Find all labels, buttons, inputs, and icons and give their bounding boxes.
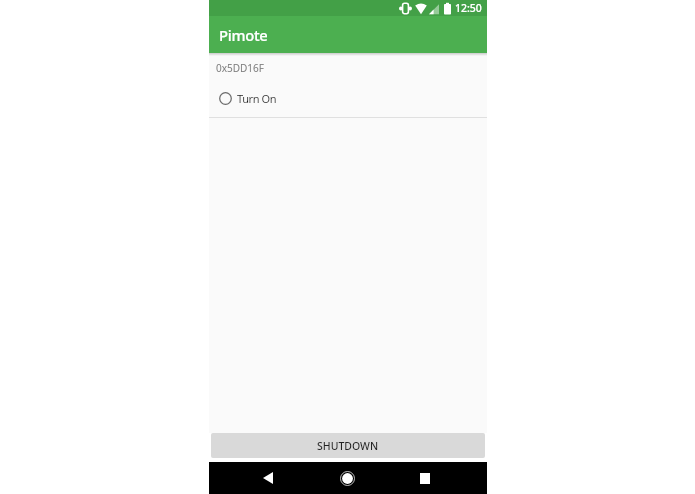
button[interactable] <box>411 464 439 492</box>
staticText: 12:50 <box>455 1 482 15</box>
staticText: 0x5DD16F <box>216 61 264 75</box>
button[interactable] <box>333 464 361 492</box>
button[interactable]: SHUTDOWN <box>211 433 485 458</box>
staticText: SHUTDOWN <box>317 439 379 453</box>
staticText: Pimote <box>219 25 268 45</box>
button[interactable]: Turn On <box>219 91 277 106</box>
button[interactable] <box>254 464 282 492</box>
staticText: Turn On <box>237 91 277 106</box>
